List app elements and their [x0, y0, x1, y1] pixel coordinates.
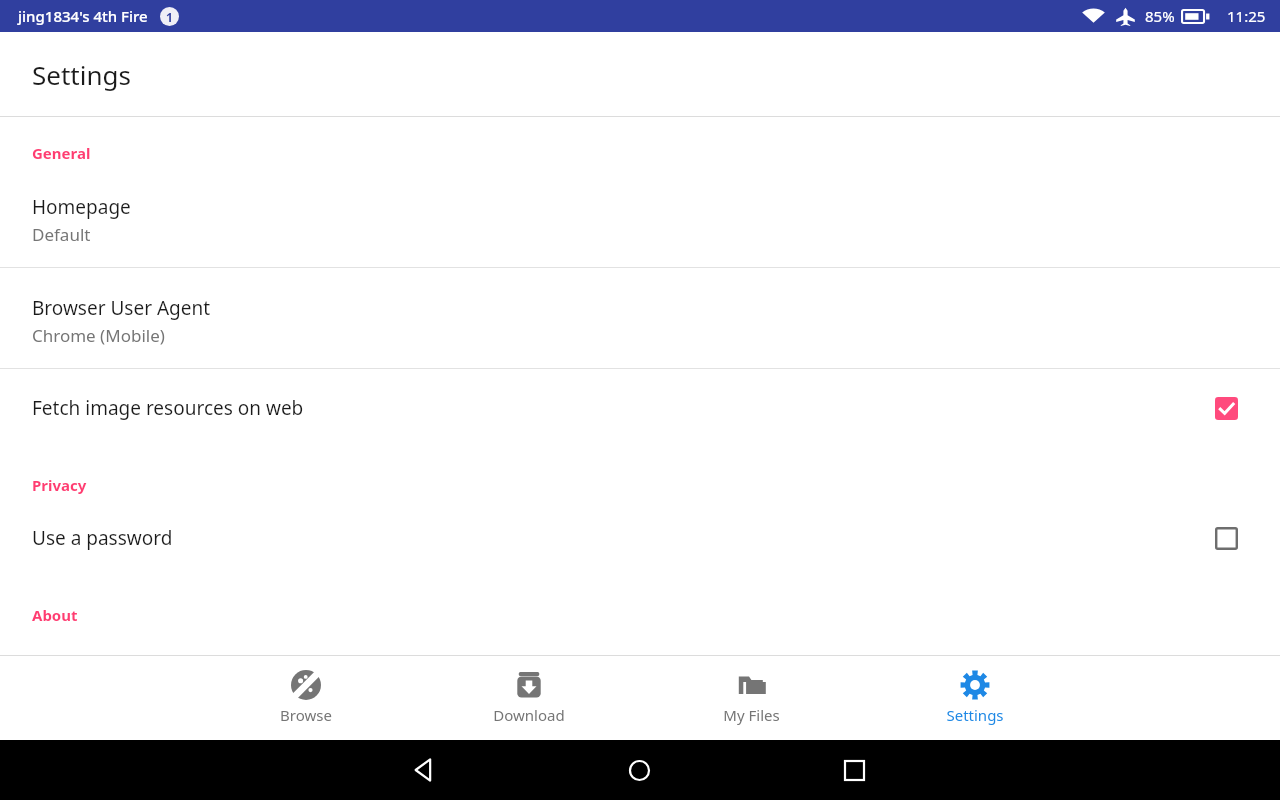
button[interactable]: Browse [194, 656, 417, 740]
staticText: About [32, 605, 78, 625]
staticText: Download [493, 705, 565, 725]
button[interactable]: Fetch image resources on web [0, 369, 1280, 447]
staticText: Privacy [32, 475, 87, 495]
staticText: Settings [946, 705, 1004, 725]
staticText: 1 [166, 9, 173, 25]
button[interactable]: Home [609, 740, 669, 800]
staticText: Chrome (Mobile) [32, 324, 165, 347]
staticText: General [32, 143, 91, 163]
button[interactable]: Homepage [0, 167, 1280, 267]
button[interactable]: Settings [863, 656, 1086, 740]
button[interactable]: Back [394, 740, 454, 800]
button[interactable]: Download [417, 656, 640, 740]
staticText: Default [32, 223, 91, 246]
staticText: Use a password [32, 525, 1215, 551]
button[interactable]: Recent apps [824, 740, 884, 800]
staticText: 85% [1145, 6, 1175, 26]
staticText: Homepage [32, 194, 131, 220]
staticText: Browser User Agent [32, 295, 211, 321]
staticText: Browse [280, 705, 332, 725]
button[interactable]: My Files [640, 656, 863, 740]
staticText: 11:25 [1227, 6, 1266, 26]
staticText: Settings [32, 57, 131, 92]
button[interactable]: Browser User Agent [0, 268, 1280, 368]
button[interactable]: Use a password [0, 499, 1280, 577]
staticText: Fetch image resources on web [32, 395, 1215, 421]
staticText: jing1834's 4th Fire [18, 6, 148, 26]
staticText: My Files [723, 705, 780, 725]
